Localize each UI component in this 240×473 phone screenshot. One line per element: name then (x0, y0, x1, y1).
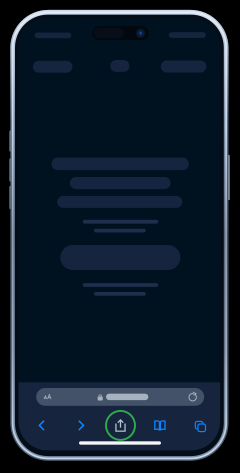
button[interactable]: Share (101, 409, 140, 441)
button[interactable]: Forward (61, 409, 101, 441)
button[interactable]: Bookmarks (140, 409, 180, 441)
button[interactable]: Back (22, 409, 61, 441)
button[interactable]: Tabs (180, 409, 219, 441)
button[interactable] (36, 388, 204, 406)
